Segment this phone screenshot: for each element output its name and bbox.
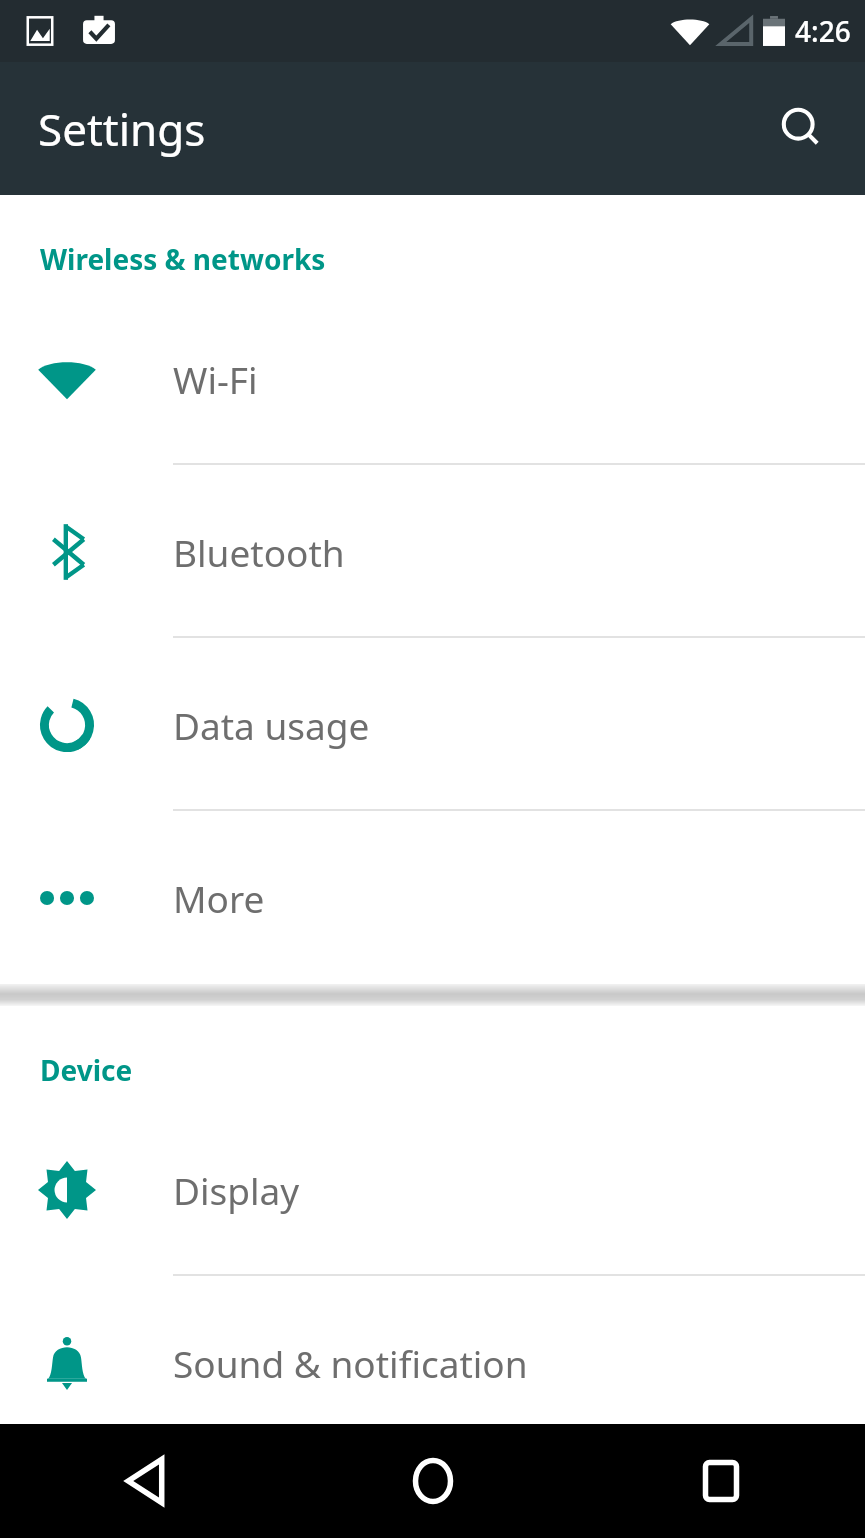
staticText: Data usage xyxy=(173,700,370,750)
button[interactable]: Display xyxy=(0,1103,865,1276)
button[interactable]: Search xyxy=(763,89,843,169)
staticText: More xyxy=(173,873,265,923)
staticText: Sound & notification xyxy=(173,1338,528,1388)
button[interactable]: Back xyxy=(102,1438,188,1524)
staticText: Device xyxy=(40,1051,133,1089)
button[interactable]: Wi-Fi xyxy=(0,292,865,465)
staticText: 4:26 xyxy=(795,12,851,50)
button[interactable]: Data usage xyxy=(0,638,865,811)
staticText: Display xyxy=(173,1165,300,1215)
staticText: Settings xyxy=(38,99,206,159)
staticText: Bluetooth xyxy=(173,527,345,577)
staticText: Wireless & networks xyxy=(40,240,326,278)
staticText: Wi-Fi xyxy=(173,354,258,404)
button[interactable]: Home xyxy=(390,1438,476,1524)
button[interactable]: Sound & notification xyxy=(0,1276,865,1449)
button[interactable]: Bluetooth xyxy=(0,465,865,638)
button[interactable]: More xyxy=(0,811,865,984)
button[interactable]: Recent apps xyxy=(678,1438,764,1524)
